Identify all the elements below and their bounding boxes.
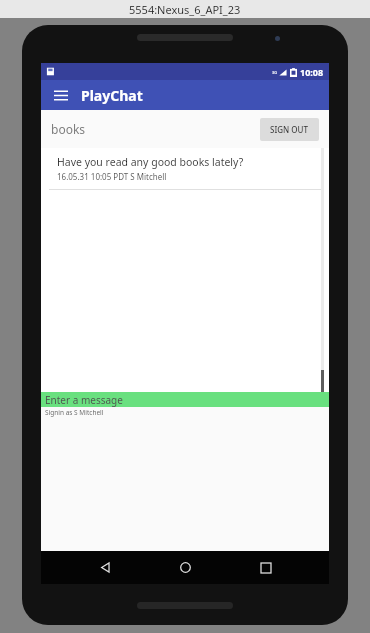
- button[interactable]: Recent apps: [249, 551, 283, 584]
- staticText: SIGN OUT: [270, 124, 309, 135]
- staticText: PlayChat: [81, 86, 143, 105]
- button[interactable]: Have you read any good books lately?: [41, 148, 329, 189]
- staticText: 16.05.31 10:05 PDT S Mitchell: [57, 171, 167, 182]
- staticText: Signin as S Mitchell: [45, 408, 104, 417]
- button[interactable]: Open navigation menu: [48, 82, 74, 108]
- button[interactable]: Home: [168, 551, 202, 584]
- staticText: 3G: [272, 70, 278, 75]
- staticText: Have you read any good books lately?: [57, 155, 244, 169]
- staticText: Enter a message: [45, 393, 123, 407]
- button[interactable]: SIGN OUT: [260, 118, 319, 141]
- button[interactable]: Back: [88, 551, 122, 584]
- staticText: 5554:Nexus_6_API_23: [129, 2, 241, 17]
- button[interactable]: Enter a message: [41, 392, 329, 407]
- staticText: 10:08: [300, 66, 324, 78]
- staticText: books: [51, 121, 86, 137]
